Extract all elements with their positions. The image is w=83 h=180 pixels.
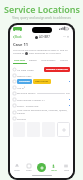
button[interactable]: More options [63, 34, 70, 39]
button[interactable]: History [59, 57, 70, 62]
staticText: Overall Class [17, 74, 32, 77]
staticText: More [64, 169, 69, 172]
button[interactable]: Details [28, 57, 38, 62]
staticText: Pictures [17, 117, 26, 120]
button[interactable]: Overall Class [13, 72, 70, 78]
staticText: Case 11 [13, 42, 28, 47]
staticText: View, query and assign work to addresses [12, 16, 71, 20]
staticText: × [67, 34, 70, 39]
button[interactable]: 100 m² [13, 84, 70, 90]
staticText: This is the job that is supposed to take… [13, 48, 68, 51]
staticText: Work Bundle Number 21 [17, 98, 45, 101]
staticText: 100 m² [17, 86, 25, 89]
button[interactable]: Add [37, 163, 46, 172]
button[interactable]: Home [12, 164, 22, 172]
button[interactable]: Scheduled [17, 79, 32, 84]
button[interactable]: No Date Listed [13, 66, 70, 72]
staticText: Scheduled [19, 80, 30, 83]
staticText: No Date Listed [17, 68, 34, 71]
button[interactable]: Attachments [40, 57, 57, 62]
staticText: Details [29, 58, 37, 61]
staticText: Teams [51, 169, 58, 172]
staticText: 9:41 [15, 28, 20, 31]
staticText: Public - Private Site [17, 104, 39, 107]
staticText: High Priority [35, 80, 49, 83]
button[interactable]: Cases [24, 164, 34, 172]
staticText: 1045 Atlantic Boulevard Drive, Montreal,… [17, 109, 70, 115]
button[interactable]: Add photo [57, 122, 70, 137]
button[interactable]: Work Bundle Number 21 [13, 96, 70, 102]
staticText: Cases [26, 169, 32, 172]
staticText: Overdue 140.00 USD [46, 68, 68, 71]
staticText: History [60, 58, 69, 61]
staticText: Home [14, 169, 20, 172]
staticText: ACHBR7 [39, 35, 50, 39]
button[interactable]: More [61, 164, 71, 172]
staticText: Back [15, 35, 22, 39]
button[interactable]: Teams [49, 164, 59, 172]
button[interactable]: Overview [13, 57, 26, 62]
button[interactable]: Public - Private Site [13, 102, 70, 108]
staticText: Created by [13, 52, 25, 55]
button[interactable]: Back [13, 35, 22, 39]
staticText: ··· [63, 34, 66, 39]
button[interactable]: High Priority [33, 79, 51, 84]
staticText: Field Technician on 12/03/2024 [29, 52, 61, 55]
staticText: Recurring Pattern [17, 92, 36, 95]
staticText: Overview [14, 58, 25, 61]
staticText: Attachments [41, 58, 56, 61]
staticText: 30% [66, 92, 70, 95]
staticText: Service Locations [4, 3, 80, 15]
